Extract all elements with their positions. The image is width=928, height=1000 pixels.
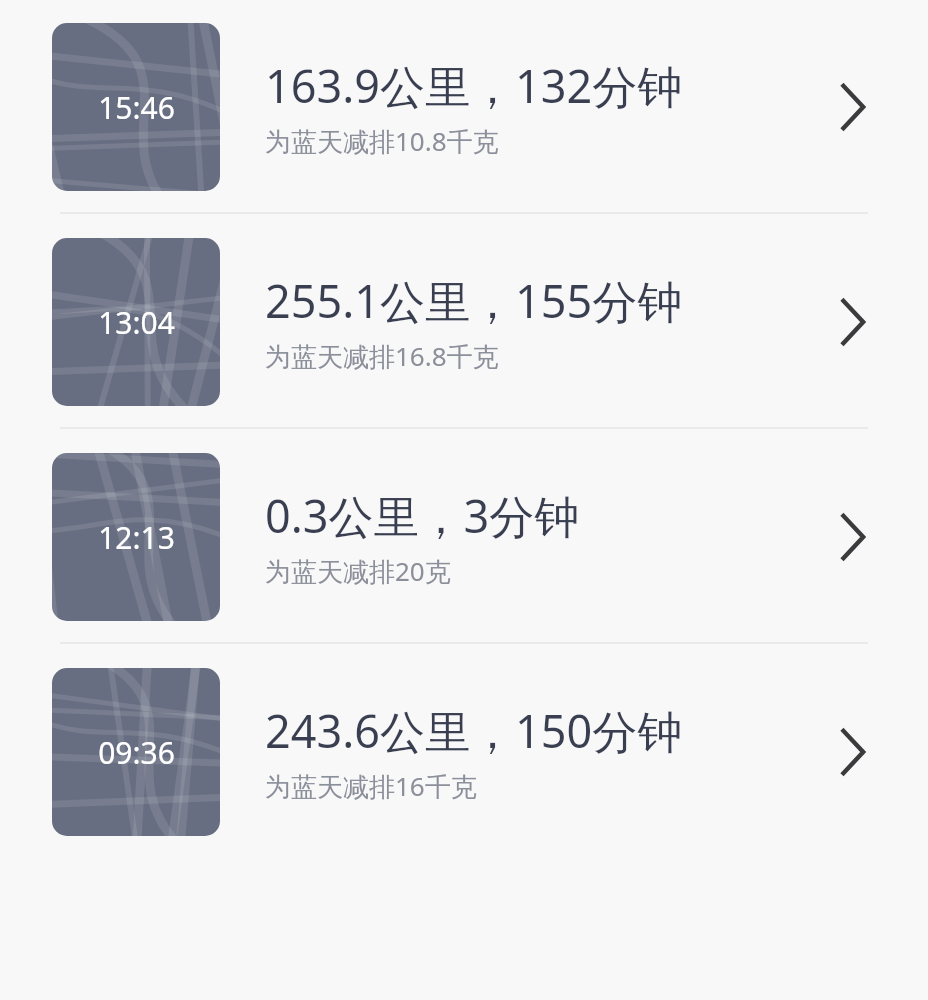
button[interactable]: 查看详情 xyxy=(829,728,877,776)
button[interactable]: 查看详情 xyxy=(829,513,877,561)
button[interactable]: 12:13 xyxy=(0,430,928,643)
button[interactable]: 查看详情 xyxy=(829,298,877,346)
staticText: 243.6公里，150分钟 xyxy=(265,700,683,761)
staticText: 13:04 xyxy=(98,302,175,343)
staticText: 0.3公里，3分钟 xyxy=(265,485,580,546)
button[interactable]: 13:04 xyxy=(0,215,928,428)
staticText: 255.1公里，155分钟 xyxy=(265,270,683,331)
button[interactable]: 15:46 xyxy=(0,0,928,213)
staticText: 为蓝天减排10.8千克 xyxy=(265,123,499,159)
staticText: 09:36 xyxy=(98,732,175,773)
button[interactable]: 查看详情 xyxy=(829,83,877,131)
staticText: 为蓝天减排16千克 xyxy=(265,768,477,804)
staticText: 为蓝天减排16.8千克 xyxy=(265,338,499,374)
staticText: 15:46 xyxy=(98,87,175,128)
staticText: 163.9公里，132分钟 xyxy=(265,55,683,116)
staticText: 为蓝天减排20克 xyxy=(265,553,451,589)
button[interactable]: 09:36 xyxy=(0,645,928,858)
staticText: 12:13 xyxy=(98,517,175,558)
